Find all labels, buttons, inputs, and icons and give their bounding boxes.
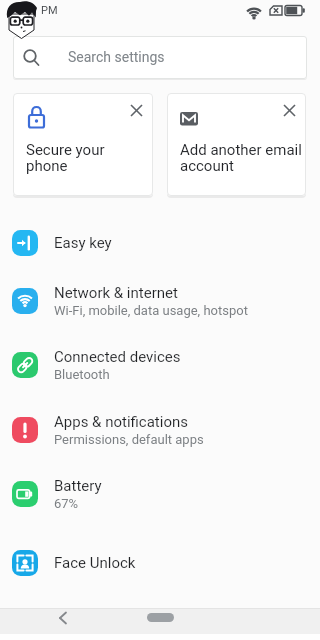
button[interactable]	[278, 99, 300, 121]
button[interactable]	[125, 99, 147, 121]
button[interactable]: Face Unlock	[0, 531, 320, 595]
button[interactable]: Easy key	[0, 211, 320, 275]
staticText: Easy key	[54, 234, 112, 252]
staticText: Face Unlock	[54, 554, 136, 572]
button[interactable]: Add another email account	[167, 93, 306, 196]
staticText: Connected devices	[54, 348, 181, 366]
staticText: Permissions, default apps	[54, 432, 204, 447]
button[interactable]: Secure your phone	[13, 93, 153, 196]
staticText: Apps & notifications	[54, 413, 188, 431]
staticText: Network & internet	[54, 284, 178, 302]
button[interactable]: Network & internet	[0, 269, 320, 333]
staticText: Bluetooth	[54, 367, 110, 382]
staticText: Battery	[54, 477, 102, 495]
button[interactable]: Apps & notifications	[0, 398, 320, 462]
staticText: Add another email account	[180, 141, 302, 175]
button[interactable]: Battery	[0, 462, 320, 526]
button[interactable]	[140, 608, 180, 627]
staticText: Wi-Fi, mobile, data usage, hotspot	[54, 303, 248, 318]
staticText: Secure your phone	[26, 141, 105, 175]
button[interactable]: Search settings	[13, 36, 307, 79]
staticText: PM	[41, 4, 58, 17]
button[interactable]	[48, 608, 78, 627]
staticText: 67%	[54, 496, 79, 511]
button[interactable]: Connected devices	[0, 333, 320, 397]
staticText: Search settings	[68, 49, 165, 65]
